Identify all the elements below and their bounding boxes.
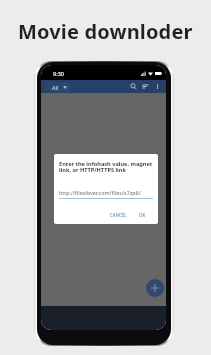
button[interactable]: More options <box>151 80 163 93</box>
staticText: http://filesfever.com/files/x7zp6/ <box>59 189 141 196</box>
button[interactable]: Add download <box>146 279 164 297</box>
button[interactable]: Search <box>127 80 139 93</box>
button[interactable]: CANCEL <box>108 210 129 220</box>
button[interactable]: Sort <box>139 80 151 93</box>
staticText: All <box>52 84 59 91</box>
staticText: CANCEL <box>110 212 127 218</box>
staticText: 9:30 <box>53 70 64 77</box>
staticText: Movie downloder <box>18 18 193 45</box>
button[interactable]: All <box>45 82 70 92</box>
staticText: OK <box>139 212 146 218</box>
button[interactable]: OK <box>137 210 148 220</box>
staticText: Enter the infohash value, magnet link, o… <box>59 160 153 174</box>
